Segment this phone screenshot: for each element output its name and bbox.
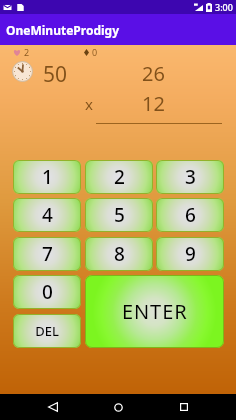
- button[interactable]: 8: [85, 237, 153, 271]
- button[interactable]: Back: [40, 394, 66, 420]
- button[interactable]: Home: [105, 394, 131, 420]
- staticText: 0: [42, 279, 53, 305]
- staticText: OneMinuteProdigy: [6, 22, 120, 38]
- button[interactable]: ENTER: [85, 275, 224, 348]
- button[interactable]: 0: [13, 275, 81, 309]
- button[interactable]: 6: [156, 198, 224, 232]
- button[interactable]: 1: [13, 160, 81, 194]
- staticText: x: [85, 94, 93, 114]
- staticText: 2: [24, 46, 30, 58]
- button[interactable]: 2: [85, 160, 153, 194]
- staticText: 3: [185, 164, 196, 190]
- button[interactable]: DEL: [13, 314, 81, 348]
- staticText: ENTER: [122, 298, 188, 325]
- staticText: 12: [142, 90, 165, 117]
- staticText: 2: [114, 164, 125, 190]
- staticText: 5: [114, 202, 125, 228]
- button[interactable]: Recent apps: [171, 394, 197, 420]
- button[interactable]: 4: [13, 198, 81, 232]
- staticText: 9: [185, 241, 196, 267]
- staticText: 1: [42, 164, 53, 190]
- staticText: 50: [43, 60, 68, 89]
- button[interactable]: 7: [13, 237, 81, 271]
- staticText: 7: [42, 241, 53, 267]
- staticText: 6: [185, 202, 196, 228]
- staticText: DEL: [35, 322, 59, 340]
- staticText: 4: [42, 202, 53, 228]
- button[interactable]: 5: [85, 198, 153, 232]
- staticText: 0: [92, 46, 98, 58]
- button[interactable]: 3: [156, 160, 224, 194]
- staticText: 8: [114, 241, 125, 267]
- staticText: 26: [142, 60, 165, 87]
- staticText: 3:00: [215, 1, 233, 13]
- button[interactable]: 9: [156, 237, 224, 271]
